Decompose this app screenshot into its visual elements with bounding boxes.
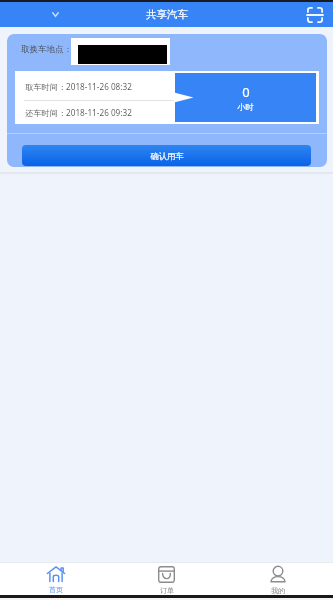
staticText: 取换车地点： <box>21 44 72 55</box>
button[interactable]: 我的 <box>222 563 333 596</box>
staticText: 取车时间：2018-11-26 08:32 <box>25 81 132 92</box>
staticText: 共享汽车 <box>146 8 188 21</box>
button[interactable]: 首页 <box>0 563 111 596</box>
staticText: 首页 <box>49 585 63 594</box>
staticText: 小时 <box>237 102 254 112</box>
button[interactable] <box>71 38 170 65</box>
button[interactable]: 订单 <box>111 563 222 596</box>
button[interactable]: 确认用车 <box>22 145 311 166</box>
staticText: 还车时间：2018-11-26 09:32 <box>25 107 132 118</box>
staticText: 确认用车 <box>150 151 184 161</box>
button[interactable]: 取车时间：2018-11-26 08:32 <box>15 71 175 99</box>
staticText: 我的 <box>271 586 285 595</box>
button[interactable]: Collapse <box>40 2 71 27</box>
button[interactable]: 还车时间：2018-11-26 09:32 <box>15 101 175 124</box>
staticText: 0 <box>242 83 250 101</box>
staticText: 订单 <box>160 586 174 595</box>
button[interactable]: Scan QR code <box>297 2 333 27</box>
